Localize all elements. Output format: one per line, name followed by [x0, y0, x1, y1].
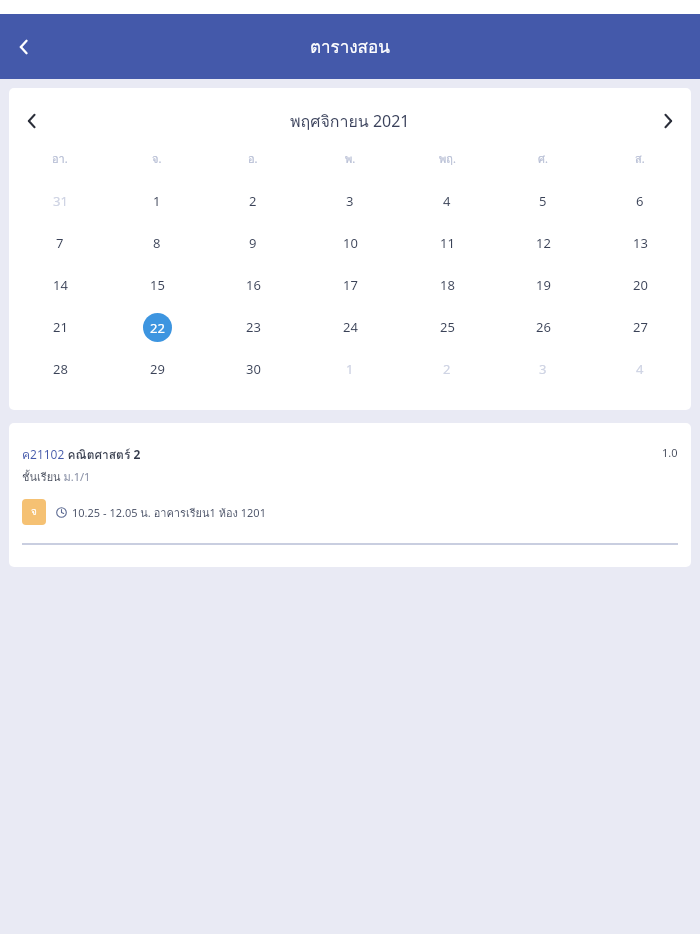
staticText: 27 — [633, 318, 648, 336]
staticText: 3 — [346, 192, 354, 210]
staticText: 23 — [246, 318, 261, 336]
button[interactable]: 4 — [399, 180, 495, 222]
button[interactable]: 3 — [302, 180, 398, 222]
button[interactable]: 17 — [302, 264, 398, 306]
staticText: 1 — [346, 360, 354, 378]
staticText: 14 — [53, 276, 68, 294]
button[interactable]: 26 — [495, 306, 591, 348]
button[interactable]: 23 — [205, 306, 301, 348]
staticText: 15 — [150, 276, 165, 294]
button[interactable]: 3 — [495, 348, 591, 390]
staticText: ตารางสอน — [310, 33, 390, 60]
staticText: 20 — [633, 276, 648, 294]
button[interactable]: 22 — [109, 306, 205, 348]
staticText: 28 — [53, 360, 68, 378]
button[interactable]: 5 — [495, 180, 591, 222]
button[interactable]: 31 — [12, 180, 108, 222]
staticText: 26 — [536, 318, 551, 336]
button[interactable]: 10 — [302, 222, 398, 264]
staticText: 31 — [53, 192, 68, 210]
staticText: 1 — [153, 192, 161, 210]
button[interactable]: 11 — [399, 222, 495, 264]
staticText: 4 — [636, 360, 644, 378]
staticText: 1.0 — [662, 445, 678, 460]
staticText: 25 — [440, 318, 455, 336]
button[interactable]: 29 — [109, 348, 205, 390]
staticText: 8 — [153, 234, 161, 252]
button[interactable]: 20 — [592, 264, 688, 306]
staticText: 16 — [246, 276, 261, 294]
staticText: 10.25 - 12.05 น. อาคารเรียน1 ห้อง 1201 — [72, 504, 266, 521]
button[interactable]: 16 — [205, 264, 301, 306]
button[interactable]: 24 — [302, 306, 398, 348]
staticText: 7 — [56, 234, 64, 252]
staticText: 24 — [343, 318, 358, 336]
button[interactable]: 2 — [205, 180, 301, 222]
button[interactable]: 30 — [205, 348, 301, 390]
button[interactable]: Previous month — [20, 108, 46, 134]
staticText: 22 — [150, 319, 165, 337]
staticText: 2 — [443, 360, 451, 378]
button[interactable]: 15 — [109, 264, 205, 306]
staticText: 21 — [53, 318, 68, 336]
button[interactable]: 4 — [592, 348, 688, 390]
button[interactable]: 18 — [399, 264, 495, 306]
staticText: พฤศจิกายน 2021 — [290, 109, 410, 134]
staticText: ชั้นเรียน ม.1/1 — [22, 468, 91, 485]
staticText: 3 — [539, 360, 547, 378]
button[interactable]: 28 — [12, 348, 108, 390]
staticText: ส. — [635, 150, 645, 167]
staticText: 4 — [443, 192, 451, 210]
staticText: อา. — [52, 150, 68, 167]
staticText: 11 — [440, 234, 455, 252]
staticText: 29 — [150, 360, 165, 378]
staticText: ศ. — [538, 150, 548, 167]
button[interactable]: 14 — [12, 264, 108, 306]
staticText: 12 — [536, 234, 551, 252]
button[interactable]: Back — [12, 34, 38, 60]
staticText: พ. — [345, 150, 356, 167]
button[interactable]: 1 — [109, 180, 205, 222]
button[interactable]: 7 — [12, 222, 108, 264]
button[interactable]: 13 — [592, 222, 688, 264]
staticText: 19 — [536, 276, 551, 294]
button[interactable]: Next month — [654, 108, 680, 134]
staticText: 13 — [633, 234, 648, 252]
staticText: 2 — [249, 192, 257, 210]
staticText: 18 — [440, 276, 455, 294]
button[interactable]: 12 — [495, 222, 591, 264]
button[interactable]: 2 — [399, 348, 495, 390]
button[interactable]: ค21102 คณิตศาสตร์ 2 — [9, 423, 691, 567]
staticText: พฤ. — [439, 150, 456, 167]
staticText: 5 — [539, 192, 547, 210]
staticText: 10 — [343, 234, 358, 252]
staticText: จ. — [152, 150, 162, 167]
staticText: 17 — [343, 276, 358, 294]
button[interactable]: 8 — [109, 222, 205, 264]
staticText: 6 — [636, 192, 644, 210]
button[interactable]: 19 — [495, 264, 591, 306]
staticText: 9 — [249, 234, 257, 252]
staticText: 30 — [246, 360, 261, 378]
staticText: อ. — [248, 150, 258, 167]
button[interactable]: 27 — [592, 306, 688, 348]
button[interactable]: 21 — [12, 306, 108, 348]
staticText: ค21102 คณิตศาสตร์ 2 — [22, 445, 141, 464]
button[interactable]: 9 — [205, 222, 301, 264]
button[interactable]: 25 — [399, 306, 495, 348]
staticText: จ — [31, 504, 37, 520]
button[interactable]: 6 — [592, 180, 688, 222]
